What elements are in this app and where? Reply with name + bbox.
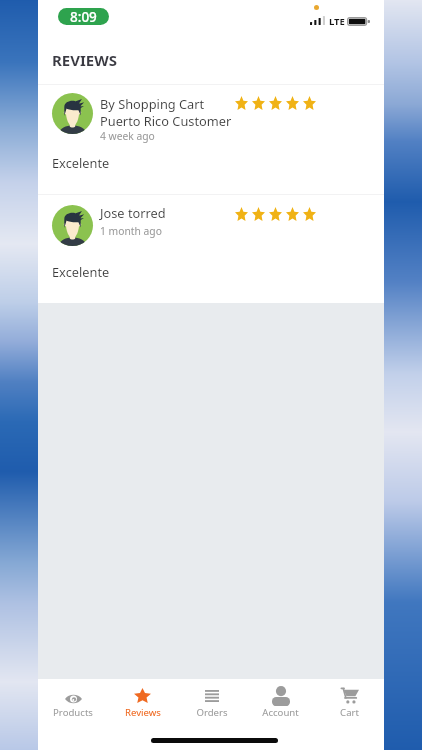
staticText: Excelente: [52, 154, 110, 171]
button[interactable]: Products: [38, 679, 108, 750]
staticText: Reviews: [125, 706, 161, 719]
staticText: Account: [262, 706, 299, 719]
button[interactable]: By Shopping Cart: [38, 85, 384, 194]
staticText: LTE: [329, 15, 345, 28]
button[interactable]: Cart: [315, 679, 384, 750]
staticText: 8:09: [70, 8, 97, 25]
staticText: 4 week ago: [100, 129, 155, 143]
staticText: Cart: [340, 706, 359, 719]
staticText: Orders: [196, 706, 228, 719]
staticText: Products: [53, 706, 93, 719]
staticText: REVIEWS: [52, 50, 117, 70]
staticText: 1 month ago: [100, 224, 162, 238]
button[interactable]: Jose torred: [38, 195, 384, 303]
button[interactable]: Orders: [177, 679, 246, 750]
button[interactable]: Account: [246, 679, 315, 750]
staticText: Excelente: [52, 263, 110, 280]
staticText: Puerto Rico Customer: [100, 112, 232, 129]
staticText: By Shopping Cart: [100, 95, 205, 112]
button[interactable]: Reviews: [108, 679, 177, 750]
staticText: Jose torred: [100, 204, 166, 221]
